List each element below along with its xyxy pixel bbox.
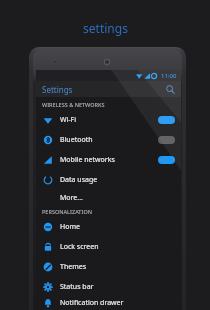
button[interactable]: Wi-Fi bbox=[36, 110, 181, 130]
button[interactable]: Themes bbox=[36, 257, 181, 277]
staticText: WIRELESS & NETWORKS bbox=[42, 101, 105, 108]
button[interactable] bbox=[158, 156, 175, 164]
button[interactable]: More... bbox=[36, 190, 181, 206]
staticText: Home bbox=[60, 222, 175, 232]
button[interactable]: Status bar bbox=[36, 277, 181, 297]
staticText: Wi-Fi bbox=[60, 115, 158, 125]
staticText: PERSONALIZATION bbox=[42, 208, 92, 215]
staticText: Mobile networks bbox=[60, 155, 158, 165]
staticText: More... bbox=[60, 193, 83, 203]
button[interactable]: Lock screen bbox=[36, 237, 181, 257]
button[interactable] bbox=[158, 116, 175, 124]
button[interactable]: Mobile networks bbox=[36, 150, 181, 170]
staticText: Status bar bbox=[60, 282, 175, 292]
button[interactable]: Data usage bbox=[36, 170, 181, 190]
staticText: Themes bbox=[60, 262, 175, 272]
staticText: Lock screen bbox=[60, 242, 175, 252]
staticText: Data usage bbox=[60, 175, 175, 185]
staticText: settings bbox=[83, 20, 128, 36]
staticText: Notification drawer bbox=[60, 298, 175, 308]
button[interactable]: Search bbox=[164, 83, 176, 95]
button[interactable]: Home bbox=[36, 217, 181, 237]
button[interactable]: Notification drawer bbox=[36, 297, 181, 309]
staticText: 11:00 bbox=[161, 72, 177, 80]
staticText: Settings bbox=[42, 84, 73, 95]
button[interactable]: Bluetooth bbox=[36, 130, 181, 150]
staticText: Bluetooth bbox=[60, 135, 158, 145]
button[interactable] bbox=[158, 136, 175, 144]
